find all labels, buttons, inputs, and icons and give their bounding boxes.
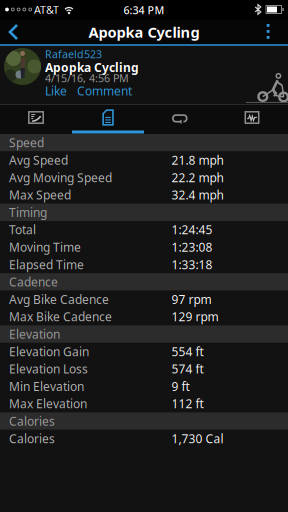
staticText: Max Speed xyxy=(9,187,71,203)
staticText: 6:34 PM xyxy=(123,3,164,17)
staticText: 4/15/16, 4:56 PM xyxy=(45,71,129,85)
staticText: Total xyxy=(9,222,36,238)
staticText: Elevation Gain xyxy=(9,343,89,359)
button[interactable]: Rafaeld523 xyxy=(45,47,102,61)
button[interactable]: More options xyxy=(258,21,278,43)
staticText: Calories xyxy=(9,430,55,446)
staticText: 554 ft xyxy=(171,343,203,359)
staticText: 112 ft xyxy=(171,396,203,412)
staticText: Elevation Loss xyxy=(9,361,88,377)
button[interactable]: Stats xyxy=(72,104,144,131)
button[interactable]: Back xyxy=(4,21,24,43)
staticText: 97 rpm xyxy=(171,291,211,307)
staticText: Avg Bike Cadence xyxy=(9,291,109,307)
button[interactable]: Like xyxy=(45,83,67,99)
staticText: 21.8 mph xyxy=(171,152,223,168)
staticText: Rafaeld523 xyxy=(45,47,102,61)
staticText: Timing xyxy=(9,204,47,220)
staticText: Min Elevation xyxy=(9,378,84,394)
staticText: Elevation xyxy=(9,326,60,342)
staticText: Elapsed Time xyxy=(9,256,84,272)
staticText: Cadence xyxy=(9,274,58,290)
staticText: Avg Moving Speed xyxy=(9,169,112,185)
button[interactable]: Charts xyxy=(216,104,288,131)
staticText: Calories xyxy=(9,413,55,429)
staticText: Apopka Cycling xyxy=(88,22,199,42)
staticText: 22.2 mph xyxy=(171,169,223,185)
staticText: 1,730 Cal xyxy=(171,430,223,446)
staticText: 129 rpm xyxy=(171,309,218,325)
staticText: 574 ft xyxy=(171,361,203,377)
staticText: Comment xyxy=(77,83,132,99)
staticText: Max Bike Cadence xyxy=(9,309,112,325)
staticText: Like xyxy=(45,83,67,99)
staticText: 1:33:18 xyxy=(171,256,212,272)
staticText: Speed xyxy=(9,135,44,151)
staticText: Max Elevation xyxy=(9,396,87,412)
button[interactable]: Profile xyxy=(4,48,41,85)
staticText: Apopka Cycling xyxy=(45,59,139,75)
staticText: 1:23:08 xyxy=(171,239,212,255)
staticText: 32.4 mph xyxy=(171,187,223,203)
button[interactable]: Laps xyxy=(144,104,216,131)
staticText: Avg Speed xyxy=(9,152,68,168)
staticText: 1:24:45 xyxy=(171,222,212,238)
staticText: AT&T xyxy=(34,3,59,17)
button[interactable]: Comment xyxy=(77,83,132,99)
button[interactable]: Overview xyxy=(0,104,72,131)
staticText: Moving Time xyxy=(9,239,81,255)
staticText: 9 ft xyxy=(171,378,189,394)
